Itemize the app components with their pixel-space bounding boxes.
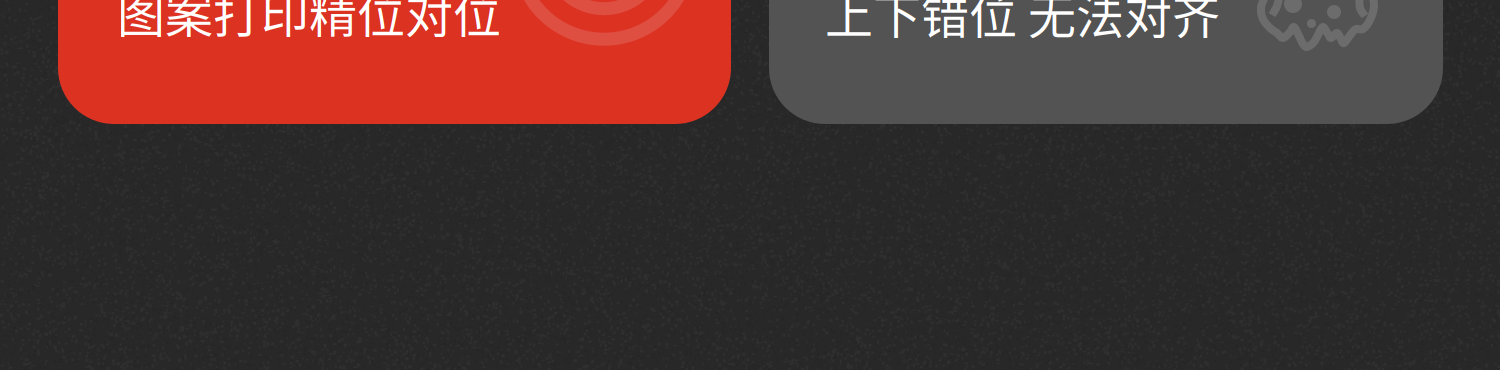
button[interactable]: 图案打印精位对位 <box>58 0 731 124</box>
staticText: 上下错位 无法对齐 <box>825 0 1220 47</box>
staticText: 图案打印精位对位 <box>117 0 501 46</box>
button[interactable]: 上下错位 无法对齐 <box>769 0 1443 124</box>
